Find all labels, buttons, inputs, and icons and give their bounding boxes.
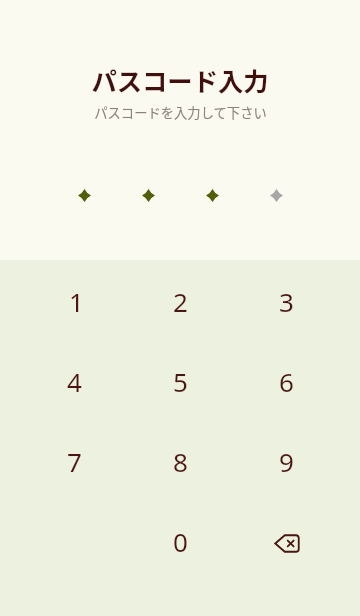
button[interactable]: 3 xyxy=(233,281,339,321)
staticText: 6 xyxy=(279,364,294,399)
button[interactable]: 5 xyxy=(127,361,233,401)
staticText: 5 xyxy=(173,364,188,399)
staticText: 8 xyxy=(173,444,188,479)
button[interactable]: 7 xyxy=(21,441,127,481)
staticText: 1 xyxy=(69,284,84,319)
staticText: 3 xyxy=(279,284,294,319)
button[interactable]: 2 xyxy=(127,281,233,321)
staticText: 7 xyxy=(67,444,82,479)
button[interactable]: 0 xyxy=(127,521,233,561)
staticText: 9 xyxy=(279,444,294,479)
staticText: パスコード入力 xyxy=(91,62,269,99)
button[interactable]: 4 xyxy=(21,361,127,401)
other: Backspace xyxy=(274,534,300,553)
button[interactable]: 6 xyxy=(233,361,339,401)
button[interactable]: 1 xyxy=(21,281,127,321)
staticText: 4 xyxy=(67,364,82,399)
staticText: パスコードを入力して下さい xyxy=(94,103,267,122)
button[interactable]: 9 xyxy=(233,441,339,481)
staticText: 2 xyxy=(173,284,188,319)
button[interactable]: Backspace xyxy=(233,521,339,561)
button[interactable]: 8 xyxy=(127,441,233,481)
staticText: 0 xyxy=(173,524,188,559)
